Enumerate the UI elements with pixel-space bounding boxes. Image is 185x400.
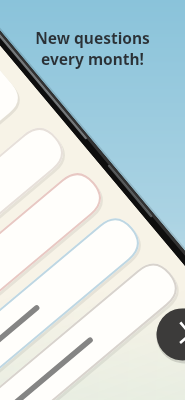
button[interactable]: Submit answer xyxy=(136,263,168,295)
staticText: New questions every month! xyxy=(35,27,150,70)
